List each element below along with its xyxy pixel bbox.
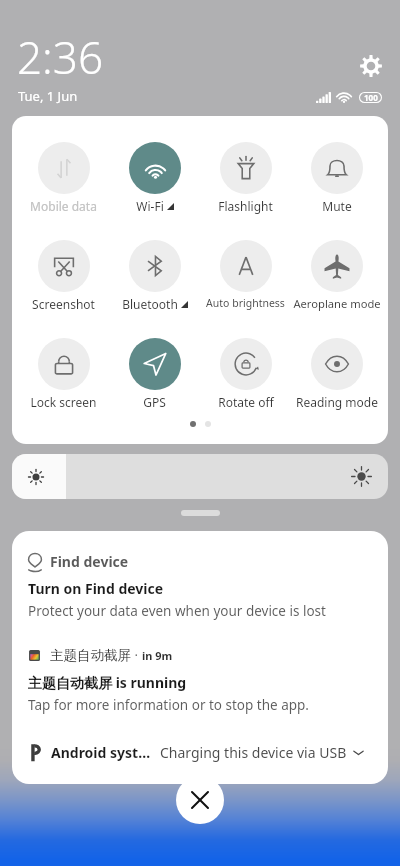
staticText: Screenshot xyxy=(32,296,95,312)
button[interactable]: Screenshot xyxy=(18,240,109,312)
staticText: Tue, 1 Jun xyxy=(18,87,78,105)
button[interactable]: Reading mode xyxy=(291,338,382,410)
staticText: Charging this device via USB xyxy=(160,743,347,762)
staticText: 100 xyxy=(364,92,378,103)
staticText: 2:36 xyxy=(17,27,104,87)
button[interactable]: 主题自动截屏 xyxy=(12,646,388,738)
staticText: Bluetooth xyxy=(122,296,178,312)
staticText: Auto brightness xyxy=(206,296,285,310)
staticText: Lock screen xyxy=(30,394,97,410)
staticText: Find device xyxy=(50,552,129,571)
button[interactable]: Auto brightness xyxy=(200,240,291,310)
staticText: Flashlight xyxy=(218,198,273,214)
button[interactable]: Bluetooth xyxy=(109,240,200,312)
staticText: Mute xyxy=(322,198,352,214)
button[interactable]: Aeroplane mode xyxy=(291,240,382,311)
staticText: Wi-Fi xyxy=(136,198,164,214)
staticText: Rotate off xyxy=(218,394,274,410)
button[interactable]: Mobile data xyxy=(18,142,109,214)
staticText: GPS xyxy=(143,394,166,410)
button[interactable]: Find device xyxy=(12,531,388,637)
staticText: · xyxy=(131,646,142,664)
button[interactable]: Wi-Fi xyxy=(109,142,200,214)
staticText: Turn on Find device xyxy=(28,579,164,598)
button[interactable]: Flashlight xyxy=(200,142,291,214)
button[interactable]: Android syst… xyxy=(12,727,388,778)
staticText: Aeroplane mode xyxy=(293,296,381,311)
staticText: Reading mode xyxy=(296,394,378,410)
button[interactable]: Rotate off xyxy=(200,338,291,410)
staticText: 主题自动截屏 is running xyxy=(28,673,187,692)
button[interactable]: Mute xyxy=(291,142,382,214)
staticText: 主题自动截屏 xyxy=(50,647,131,664)
staticText: Protect your data even when your device … xyxy=(28,602,326,620)
button[interactable]: Lock screen xyxy=(18,338,109,410)
staticText: Android syst… xyxy=(51,743,151,762)
button[interactable]: Brightness xyxy=(12,454,388,499)
button[interactable]: Close xyxy=(176,776,224,824)
staticText: in 9m xyxy=(142,648,173,663)
staticText: Tap for more information or to stop the … xyxy=(28,696,309,714)
button[interactable]: Settings xyxy=(353,48,389,84)
staticText: Mobile data xyxy=(30,198,97,214)
button[interactable]: GPS xyxy=(109,338,200,410)
